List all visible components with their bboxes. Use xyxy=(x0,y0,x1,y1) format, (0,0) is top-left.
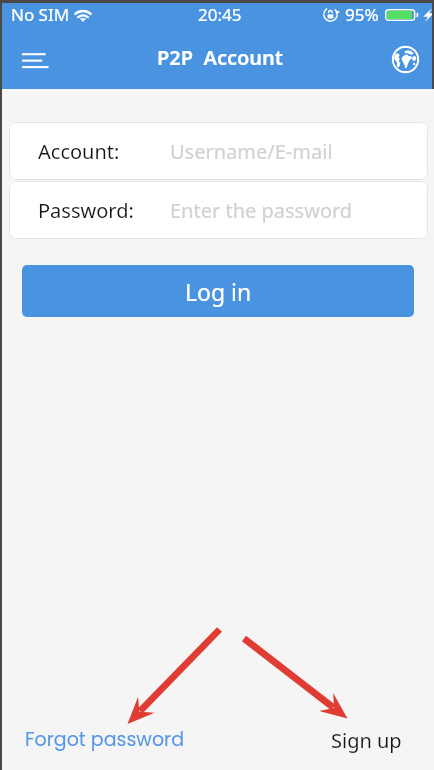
staticText: Forgot password xyxy=(25,726,185,753)
button[interactable]: Password: xyxy=(9,181,428,239)
staticText: Username/E-mail xyxy=(170,138,333,165)
button[interactable]: Language xyxy=(385,39,425,79)
button[interactable]: Forgot password xyxy=(25,726,185,753)
staticText: Account: xyxy=(38,138,120,165)
button[interactable]: Sign up xyxy=(331,727,402,754)
staticText: Log in xyxy=(185,276,252,307)
staticText: Password: xyxy=(38,197,134,224)
staticText: Enter the password xyxy=(170,197,353,224)
button[interactable]: Menu xyxy=(12,36,56,80)
staticText: 95% xyxy=(345,3,379,26)
staticText: P2P Account xyxy=(157,44,283,71)
button[interactable]: Log in xyxy=(22,265,414,317)
staticText: No SIM xyxy=(11,3,70,26)
button[interactable]: Account: xyxy=(9,122,428,180)
staticText: 20:45 xyxy=(198,3,242,26)
staticText: Sign up xyxy=(331,727,402,754)
